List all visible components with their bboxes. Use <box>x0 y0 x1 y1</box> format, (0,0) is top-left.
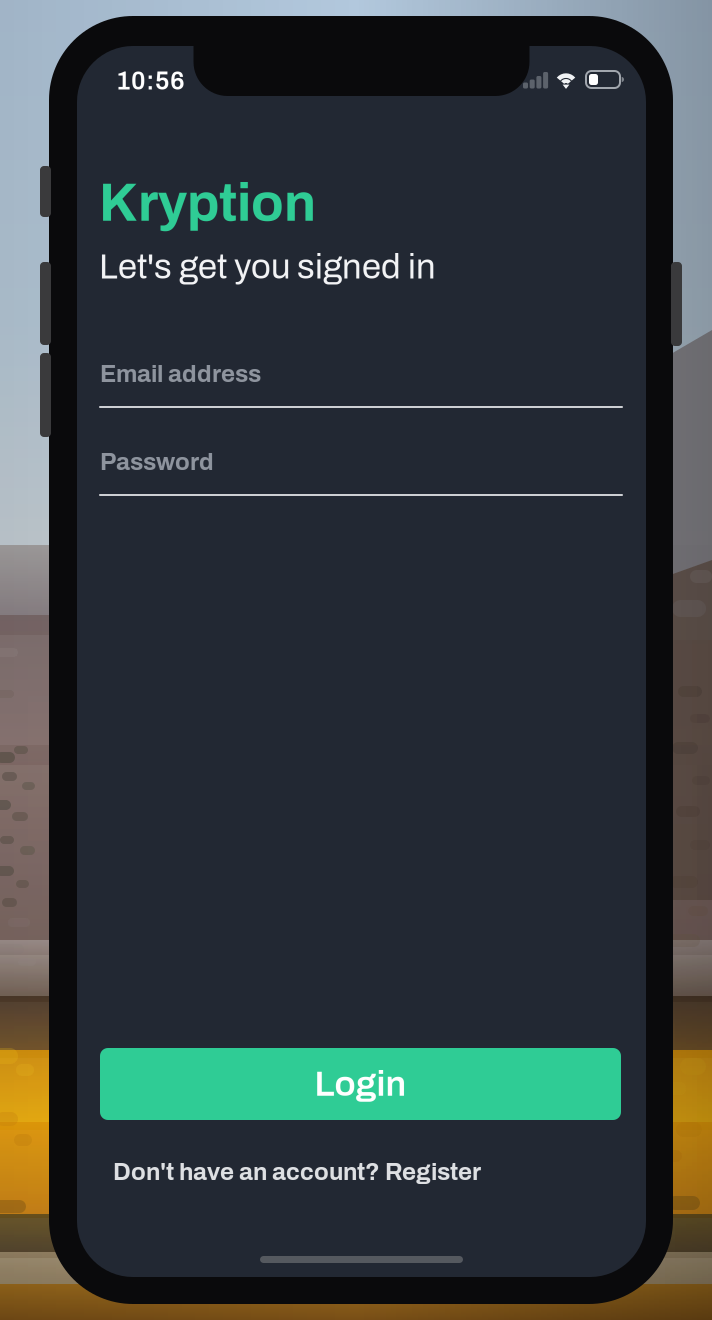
staticText: Let's get you signed in <box>99 248 436 286</box>
staticText: Don't have an account? Register <box>113 1159 481 1185</box>
staticText: Login <box>314 1065 406 1103</box>
button[interactable]: Don't have an account? Register <box>113 1152 622 1192</box>
staticText: 10:56 <box>116 67 185 95</box>
button[interactable]: Password <box>100 448 624 502</box>
staticText: Email address <box>100 361 261 387</box>
staticText: Password <box>100 449 214 475</box>
button[interactable]: Email address <box>100 360 624 414</box>
button[interactable]: Login <box>100 1048 621 1120</box>
staticText: Kryption <box>99 174 316 232</box>
